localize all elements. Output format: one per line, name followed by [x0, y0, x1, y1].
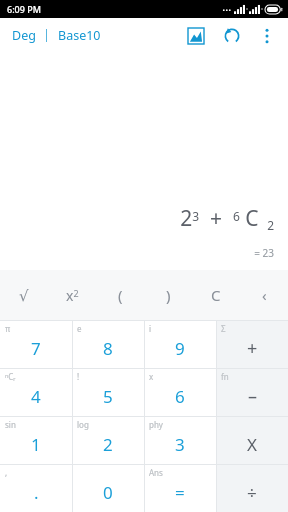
staticText: 6:09 PM: [7, 3, 41, 15]
button[interactable]: ‹: [240, 270, 288, 320]
staticText: 5: [103, 385, 113, 408]
staticText: =: [175, 481, 185, 504]
button[interactable]: log: [72, 417, 144, 464]
button[interactable]: phy: [144, 417, 216, 464]
staticText: 2: [103, 433, 113, 456]
button[interactable]: √: [0, 270, 48, 320]
staticText: ): [166, 285, 171, 305]
button[interactable]: i: [144, 321, 216, 368]
button[interactable]: π: [0, 321, 72, 368]
staticText: x: [149, 371, 154, 382]
button[interactable]: (: [96, 270, 144, 320]
button[interactable]: Graph: [178, 18, 214, 53]
staticText: 6: [175, 385, 185, 408]
staticText: sin: [5, 419, 16, 430]
staticText: x2: [66, 286, 79, 305]
button[interactable]: Deg: [10, 23, 38, 48]
button[interactable]: X: [216, 417, 288, 464]
staticText: π: [5, 323, 11, 334]
button[interactable]: e: [72, 321, 144, 368]
staticText: Σ: [221, 323, 226, 334]
button[interactable]: History: [214, 18, 250, 53]
staticText: Base10: [58, 27, 101, 44]
button[interactable]: Base10: [56, 23, 103, 48]
staticText: 23 + 6 C 2: [180, 204, 274, 233]
staticText: Ans: [149, 467, 163, 478]
staticText: 7: [31, 337, 41, 360]
button[interactable]: x2: [48, 270, 96, 320]
button[interactable]: ÷: [216, 465, 288, 512]
staticText: 0: [103, 481, 113, 504]
staticText: log: [77, 419, 89, 430]
staticText: 3: [175, 433, 185, 456]
staticText: C: [211, 285, 221, 305]
button[interactable]: ): [144, 270, 192, 320]
staticText: √: [19, 287, 29, 304]
staticText: phy: [149, 419, 163, 430]
staticText: Deg: [12, 27, 36, 44]
button[interactable]: x: [144, 369, 216, 416]
button[interactable]: sin: [0, 417, 72, 464]
button[interactable]: Σ: [216, 321, 288, 368]
staticText: –: [248, 384, 257, 409]
button[interactable]: 0: [72, 465, 144, 512]
staticText: = 23: [254, 246, 274, 260]
button[interactable]: C: [192, 270, 240, 320]
staticText: X: [247, 433, 257, 456]
staticText: ‹: [262, 285, 267, 305]
staticText: ,: [5, 467, 8, 478]
staticText: 4: [31, 385, 41, 408]
button[interactable]: More options: [250, 19, 284, 53]
staticText: 1: [31, 433, 41, 456]
staticText: ⁿCᵣ: [5, 371, 16, 382]
staticText: +: [247, 336, 258, 361]
staticText: i: [149, 323, 152, 334]
staticText: ÷: [247, 481, 257, 504]
staticText: 8: [103, 337, 113, 360]
staticText: e: [77, 323, 82, 334]
staticText: (: [118, 285, 123, 305]
button[interactable]: ⁿCᵣ: [0, 369, 72, 416]
button[interactable]: ,: [0, 465, 72, 512]
staticText: .: [34, 481, 39, 504]
staticText: !: [77, 371, 80, 382]
button[interactable]: Ans: [144, 465, 216, 512]
staticText: 9: [175, 337, 185, 360]
button[interactable]: fn: [216, 369, 288, 416]
button[interactable]: !: [72, 369, 144, 416]
staticText: fn: [221, 371, 229, 382]
